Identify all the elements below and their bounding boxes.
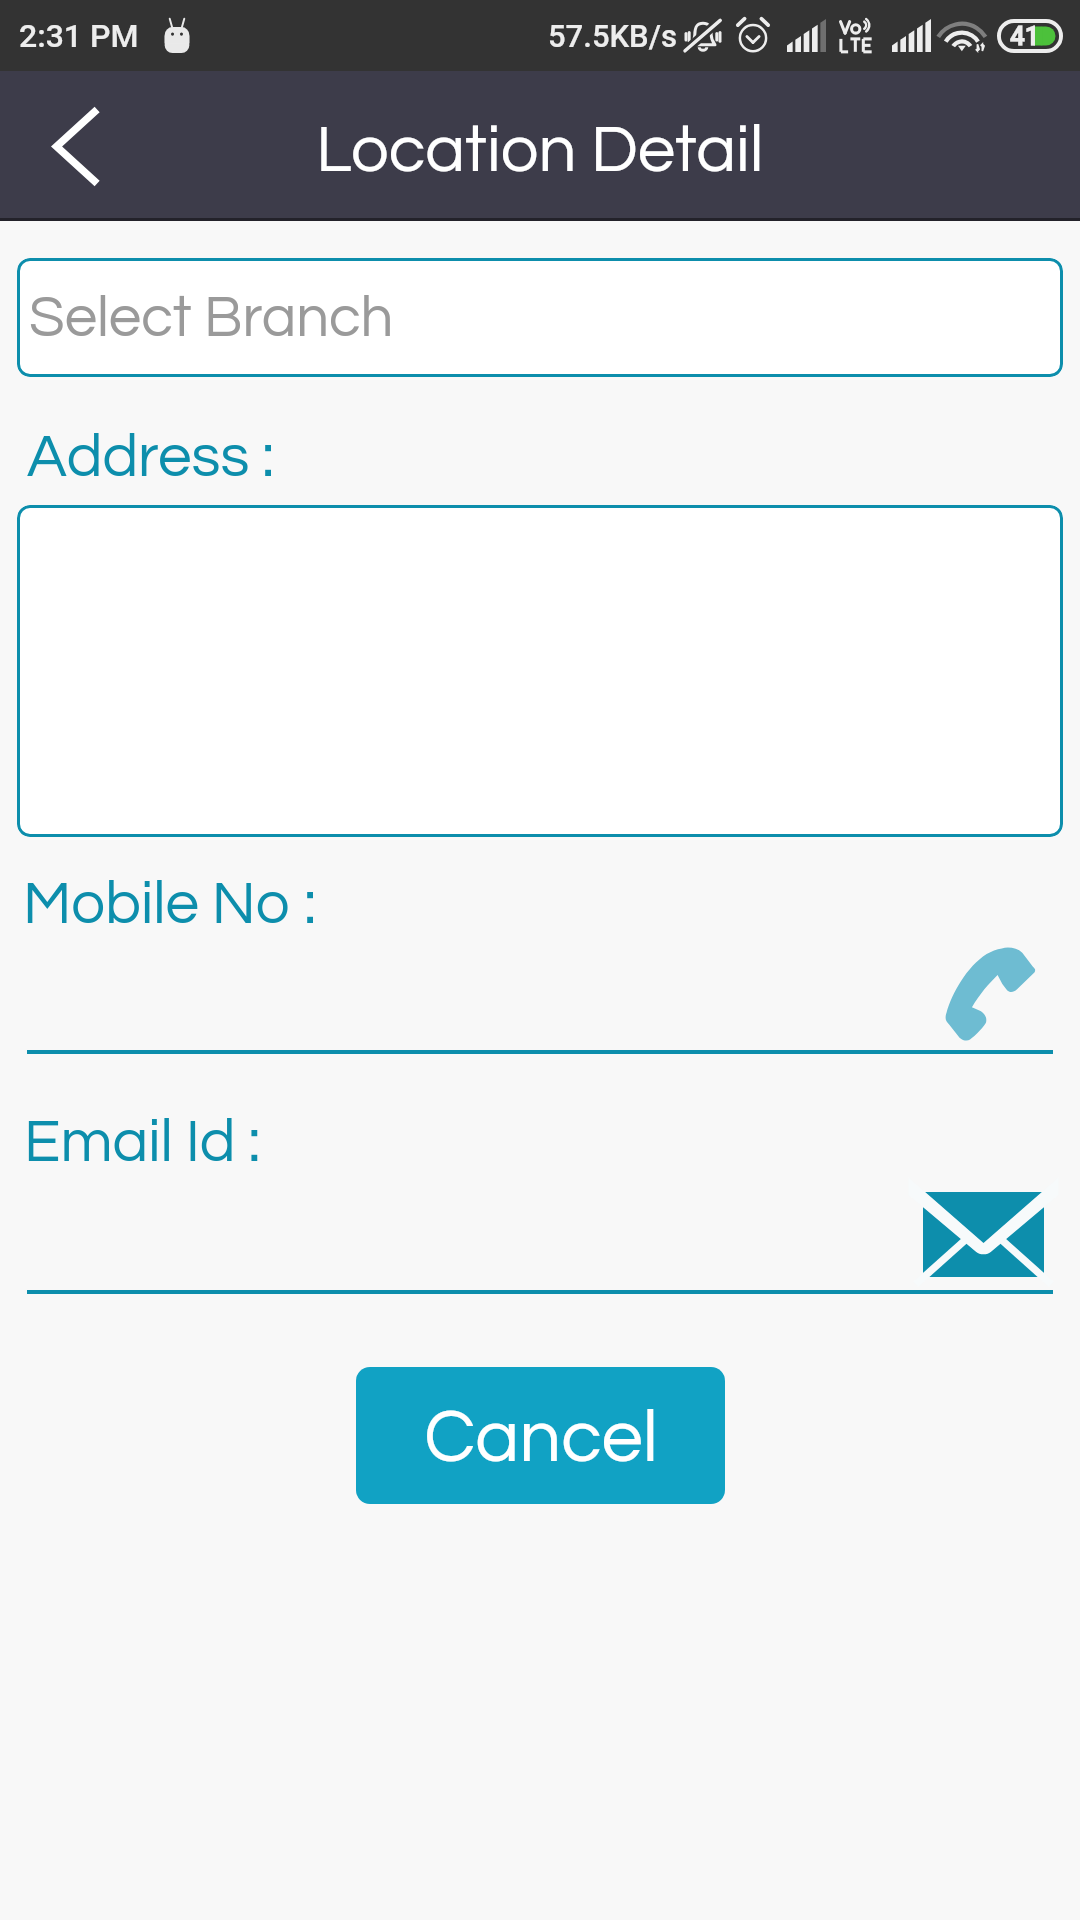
- staticText: 41: [1010, 21, 1040, 51]
- button[interactable]: Select Branch: [17, 258, 1063, 377]
- staticText: Cancel: [424, 1400, 658, 1476]
- staticText: Mobile No :: [23, 874, 317, 936]
- staticText: Select Branch: [29, 288, 394, 348]
- button[interactable]: Call: [942, 946, 1037, 1041]
- button[interactable]: Back: [31, 98, 103, 195]
- staticText: Location Detail: [316, 116, 764, 185]
- staticText: Address :: [27, 427, 275, 489]
- staticText: Email Id :: [24, 1112, 261, 1174]
- staticText: 2:31 PM: [19, 17, 139, 55]
- staticText: 57.5KB/s: [548, 18, 677, 54]
- button[interactable]: Email: [923, 1192, 1044, 1277]
- button[interactable]: Cancel: [356, 1367, 725, 1504]
- button[interactable]: [17, 505, 1063, 837]
